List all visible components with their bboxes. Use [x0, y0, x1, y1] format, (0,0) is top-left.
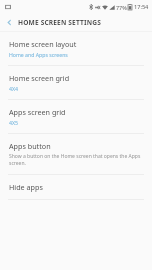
button[interactable]: Apps screen grid — [0, 100, 152, 133]
button[interactable]: Hide apps — [0, 175, 152, 199]
staticText: 77% — [116, 4, 127, 11]
button[interactable]: Apps button — [0, 134, 152, 174]
button[interactable]: Navigate up — [0, 14, 18, 31]
staticText: Apps screen grid — [9, 107, 66, 117]
staticText: Apps button — [9, 141, 51, 151]
staticText: Show a button on the Home screen that op… — [9, 153, 143, 167]
staticText: Hide apps — [9, 182, 43, 192]
staticText: 4X4 — [9, 85, 18, 92]
staticText: 4X5 — [9, 119, 18, 126]
staticText: HOME SCREEN SETTINGS — [18, 18, 101, 27]
staticText: Home screen grid — [9, 73, 70, 83]
staticText: 17:54 — [134, 3, 149, 11]
button[interactable]: Home screen layout — [0, 32, 152, 65]
staticText: Home and Apps screens — [9, 51, 68, 58]
button[interactable]: Home screen grid — [0, 66, 152, 99]
staticText: Home screen layout — [9, 39, 77, 49]
